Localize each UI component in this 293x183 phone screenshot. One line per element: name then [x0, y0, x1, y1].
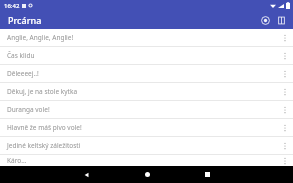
staticText: Hlavně že máš pivo vole!	[7, 123, 276, 132]
button[interactable]: Čas klidu	[0, 47, 293, 64]
button[interactable]: More options	[276, 155, 293, 166]
button[interactable]: More options	[276, 47, 293, 64]
staticText: Čas klidu	[7, 51, 276, 60]
button[interactable]: More options	[276, 101, 293, 118]
staticText: Děleeeej..!	[7, 69, 276, 78]
button[interactable]: More options	[276, 29, 293, 46]
button[interactable]: Back	[57, 166, 117, 183]
button[interactable]: Děkuj, je na stole kytka	[0, 83, 293, 100]
button[interactable]: More options	[276, 65, 293, 82]
button[interactable]: Record	[257, 12, 273, 28]
button[interactable]: Jediné keltský záležitosti	[0, 137, 293, 154]
staticText: 16:42	[4, 2, 20, 10]
button[interactable]: Recent apps	[177, 166, 237, 183]
button[interactable]: Duranga vole!	[0, 101, 293, 118]
staticText: Duranga vole!	[7, 105, 276, 114]
button[interactable]: Káro...	[0, 155, 293, 166]
button[interactable]: More options	[276, 119, 293, 136]
staticText: Anglie, Anglie, Anglie!	[7, 33, 276, 42]
button[interactable]: Anglie, Anglie, Anglie!	[0, 29, 293, 46]
button[interactable]: Home	[117, 166, 177, 183]
button[interactable]: Info	[273, 12, 289, 28]
staticText: Prcárna	[8, 14, 42, 26]
button[interactable]: Hlavně že máš pivo vole!	[0, 119, 293, 136]
button[interactable]: More options	[276, 83, 293, 100]
staticText: Děkuj, je na stole kytka	[7, 87, 276, 96]
button[interactable]: Děleeeej..!	[0, 65, 293, 82]
staticText: Káro...	[7, 156, 276, 165]
button[interactable]: More options	[276, 137, 293, 154]
staticText: Jediné keltský záležitosti	[7, 141, 276, 150]
